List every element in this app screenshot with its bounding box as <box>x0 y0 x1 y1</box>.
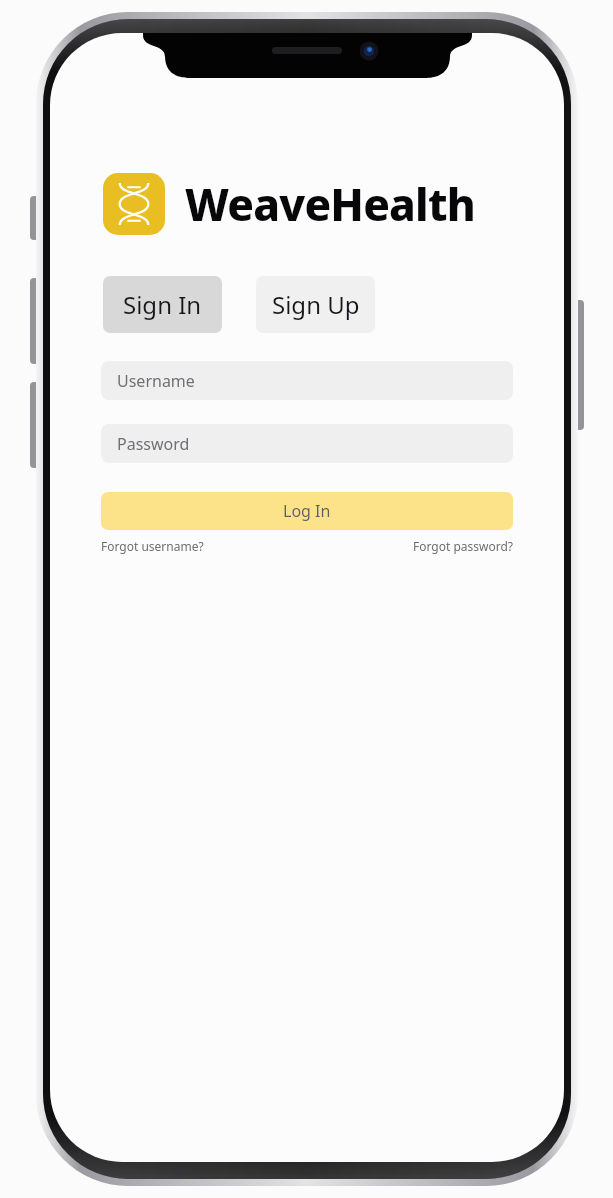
button[interactable]: Username <box>101 361 513 400</box>
staticText: Log In <box>283 500 331 522</box>
button[interactable]: Sign Up <box>256 276 375 333</box>
staticText: Sign In <box>123 288 202 321</box>
staticText: Username <box>117 370 195 392</box>
staticText: Sign Up <box>272 288 360 321</box>
button[interactable]: Sign In <box>103 276 222 333</box>
staticText: Password <box>117 433 190 455</box>
button[interactable]: Forgot username? <box>101 538 204 554</box>
staticText: Forgot password? <box>412 538 513 554</box>
button[interactable]: Forgot password? <box>412 538 513 554</box>
button[interactable]: Password <box>101 424 513 463</box>
staticText: Forgot username? <box>101 538 204 554</box>
button[interactable]: Log In <box>101 492 513 530</box>
staticText: WeaveHealth <box>185 174 475 234</box>
